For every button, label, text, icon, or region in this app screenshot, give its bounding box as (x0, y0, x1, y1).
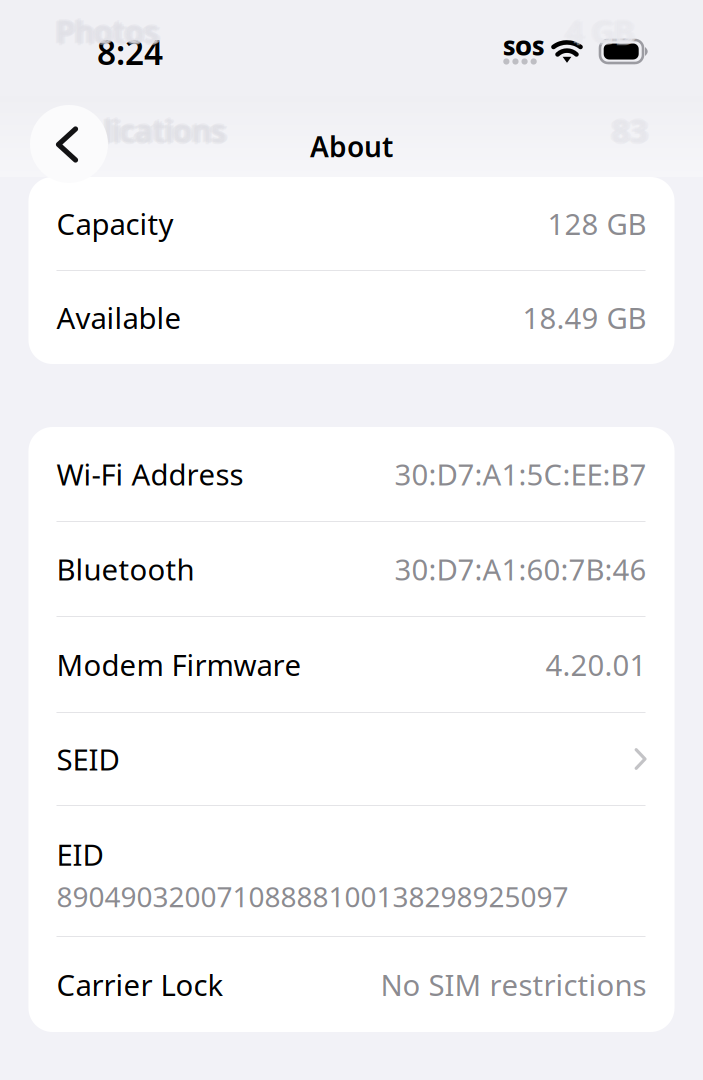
staticText: Photos (54, 10, 157, 51)
staticText: About (310, 128, 393, 165)
staticText: Capacity (56, 204, 173, 243)
staticText: lications (107, 110, 229, 151)
staticText: lications (101, 110, 223, 151)
staticText: 4 GB (568, 12, 636, 53)
button[interactable]: Modem Firmware (28, 617, 674, 712)
button[interactable]: Carrier Lock (28, 937, 674, 1032)
staticText: EID (56, 835, 103, 874)
staticText: Photos (56, 11, 159, 52)
staticText: 83 (615, 110, 651, 151)
staticText: SOS (503, 33, 544, 61)
button[interactable]: Capacity (28, 177, 674, 270)
button[interactable]: Bluetooth (28, 522, 674, 616)
staticText: lications (104, 108, 226, 149)
staticText: 30:D7:A1:60:7B:46 (394, 549, 646, 588)
staticText: 83 (614, 111, 650, 152)
staticText: Wi-Fi Address (56, 454, 243, 493)
staticText: 30:D7:A1:5C:EE:B7 (394, 454, 646, 493)
staticText: Photos (56, 9, 159, 50)
staticText: lications (104, 112, 226, 153)
staticText: 4 GB (563, 11, 631, 52)
staticText: 4 GB (566, 13, 634, 54)
staticText: Available (56, 298, 181, 337)
staticText: 83 (609, 110, 645, 151)
staticText: 4 GB (564, 10, 632, 51)
staticText: Modem Firmware (56, 645, 301, 684)
staticText: Photos (59, 11, 162, 52)
button[interactable]: EID (28, 806, 674, 936)
button[interactable]: Wi-Fi Address (28, 427, 674, 521)
staticText: 83 (610, 109, 646, 150)
button[interactable]: Back (30, 105, 108, 183)
staticText: lications (106, 111, 228, 152)
staticText: Carrier Lock (56, 965, 223, 1004)
staticText: 4 GB (569, 11, 637, 52)
staticText: 4 GB (566, 11, 634, 52)
staticText: 83 (612, 110, 648, 151)
staticText: No SIM restrictions (380, 965, 646, 1004)
staticText: lications (104, 110, 226, 151)
staticText: 128 GB (547, 204, 646, 243)
staticText: lications (102, 109, 224, 150)
staticText: SEID (56, 739, 119, 778)
staticText: Photos (53, 11, 156, 52)
staticText: Photos (58, 12, 161, 53)
staticText: 89049032007108888100138298925097 (56, 878, 568, 915)
staticText: Bluetooth (56, 549, 194, 588)
staticText: Photos (56, 13, 159, 54)
staticText: 83 (612, 108, 648, 149)
button[interactable]: SEID (28, 713, 674, 805)
staticText: 8:24 (97, 30, 163, 74)
staticText: 83 (612, 112, 648, 153)
staticText: 4 GB (566, 9, 634, 50)
staticText: 4.20.01 (545, 645, 646, 684)
staticText: 18.49 GB (522, 298, 646, 337)
button[interactable]: Available (28, 271, 674, 364)
